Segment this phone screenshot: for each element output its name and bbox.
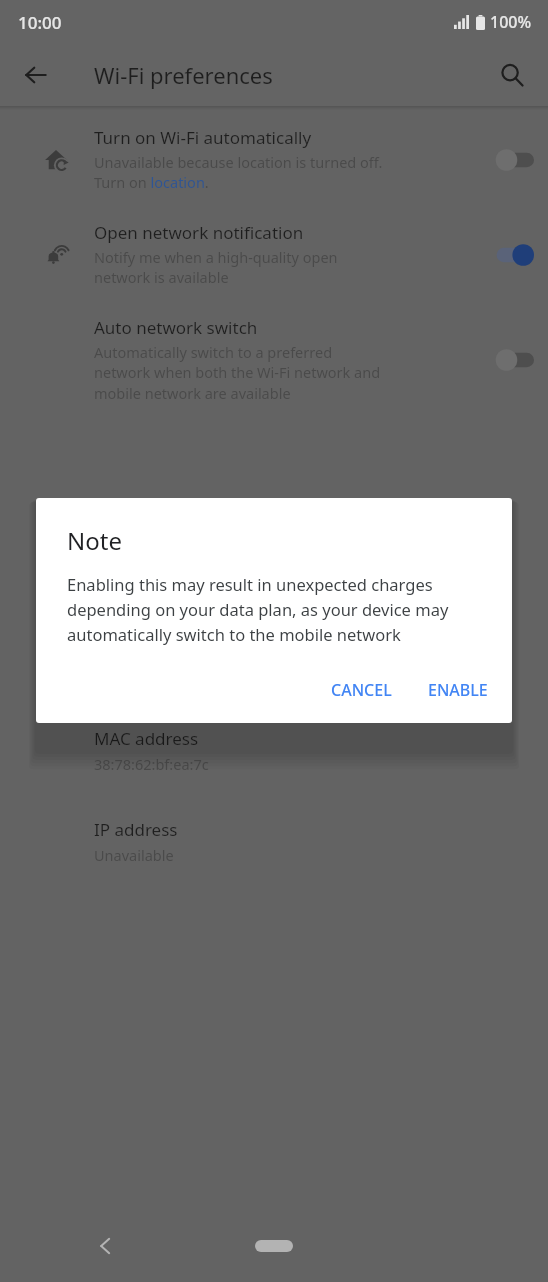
staticText: Turn on Wi-Fi automatically	[94, 126, 312, 149]
button[interactable]: Back	[8, 47, 64, 103]
staticText: Unavailable because location is turned o…	[94, 152, 383, 193]
staticText: 38:78:62:bf:ea:7c	[94, 754, 209, 774]
button[interactable]: Home	[238, 1235, 310, 1257]
button[interactable]: ENABLE	[414, 667, 502, 713]
button[interactable]: Back	[82, 1222, 130, 1270]
staticText: Notify me when a high-quality open netwo…	[94, 247, 338, 288]
button[interactable]: Open network notification	[482, 240, 534, 270]
staticText: Automatically switch to a preferred netw…	[94, 342, 381, 404]
staticText: 10:00	[18, 11, 62, 34]
staticText: 100%	[490, 11, 532, 33]
staticText: CANCEL	[331, 679, 392, 701]
button[interactable]: Wi-Fi Direct	[0, 644, 548, 693]
staticText: Auto network switch	[94, 316, 258, 339]
staticText: Wi-Fi preferences	[94, 60, 273, 90]
button[interactable]: Auto network switch	[0, 292, 548, 408]
staticText: Open network notification	[94, 221, 304, 244]
staticText: MAC address	[94, 727, 199, 750]
button[interactable]: Auto network switch	[482, 345, 534, 375]
button[interactable]: Open network notification	[0, 197, 548, 292]
staticText: Note	[67, 524, 122, 557]
button[interactable]: MAC address	[0, 711, 548, 784]
staticText: ENABLE	[428, 679, 488, 701]
button[interactable]: Turn on Wi-Fi automatically	[0, 110, 548, 197]
button[interactable]: Search	[484, 47, 540, 103]
button[interactable]: IP address	[0, 802, 548, 875]
staticText: Unavailable	[94, 845, 174, 865]
staticText: Enabling this may result in unexpected c…	[67, 573, 486, 645]
button[interactable]: CANCEL	[317, 667, 406, 713]
staticText: IP address	[94, 818, 178, 841]
button[interactable]: Turn on Wi-Fi automatically	[482, 145, 534, 175]
